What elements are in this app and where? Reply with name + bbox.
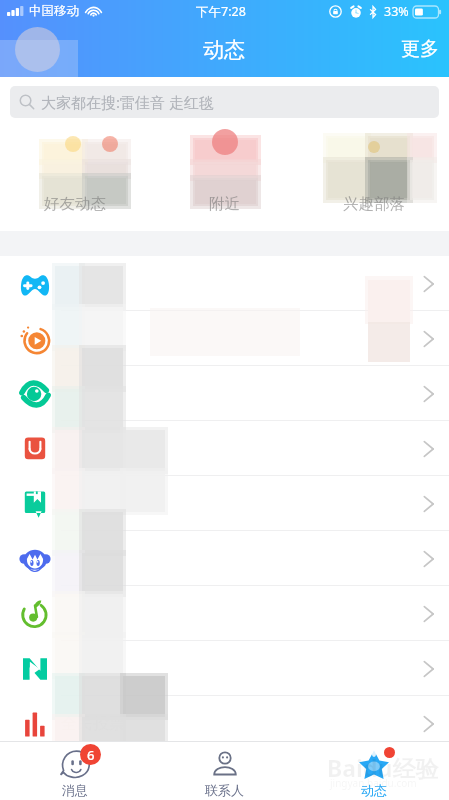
staticText: 全民投票: [61, 714, 423, 734]
button[interactable]: [0, 641, 449, 696]
staticText: 动态: [203, 37, 245, 63]
button[interactable]: [0, 366, 449, 421]
button[interactable]: 更多: [387, 28, 449, 70]
button[interactable]: 附近: [149, 128, 299, 231]
button[interactable]: Profile: [15, 27, 60, 72]
staticText: [61, 438, 423, 460]
button[interactable]: [0, 311, 449, 366]
staticText: [61, 658, 423, 680]
button[interactable]: 大家都在搜:雷佳音 走红毯: [10, 86, 439, 118]
staticText: 33%: [384, 3, 409, 20]
button[interactable]: [0, 586, 449, 641]
staticText: 兴趣部落: [343, 194, 405, 214]
staticText: 更多: [401, 37, 439, 61]
button[interactable]: 兴趣部落: [299, 128, 449, 231]
staticText: [61, 273, 423, 295]
staticText: 大家都在搜:雷佳音 走红毯: [41, 92, 214, 112]
button[interactable]: [0, 531, 449, 586]
staticText: 消息: [62, 782, 88, 798]
button[interactable]: 动态: [299, 742, 449, 800]
staticText: 下午7:28: [196, 3, 246, 20]
staticText: 附近: [209, 194, 240, 214]
button[interactable]: [0, 421, 449, 476]
button[interactable]: 全民投票: [0, 696, 449, 751]
button[interactable]: 联系人: [149, 742, 299, 800]
button[interactable]: 好友动态: [0, 128, 149, 231]
staticText: 好友动态: [44, 194, 106, 214]
staticText: 联系人: [205, 782, 244, 798]
staticText: 6: [87, 746, 95, 764]
staticText: [61, 383, 423, 405]
staticText: jingyan.baidu.com: [330, 776, 417, 790]
staticText: Baidu经验: [327, 752, 439, 783]
button[interactable]: [0, 476, 449, 531]
staticText: [61, 603, 423, 625]
staticText: [61, 328, 423, 350]
staticText: 动态: [361, 782, 387, 798]
staticText: 中国移动: [29, 3, 79, 19]
staticText: [61, 493, 423, 515]
button[interactable]: 6: [0, 742, 149, 800]
button[interactable]: [0, 256, 449, 311]
staticText: [61, 548, 423, 570]
